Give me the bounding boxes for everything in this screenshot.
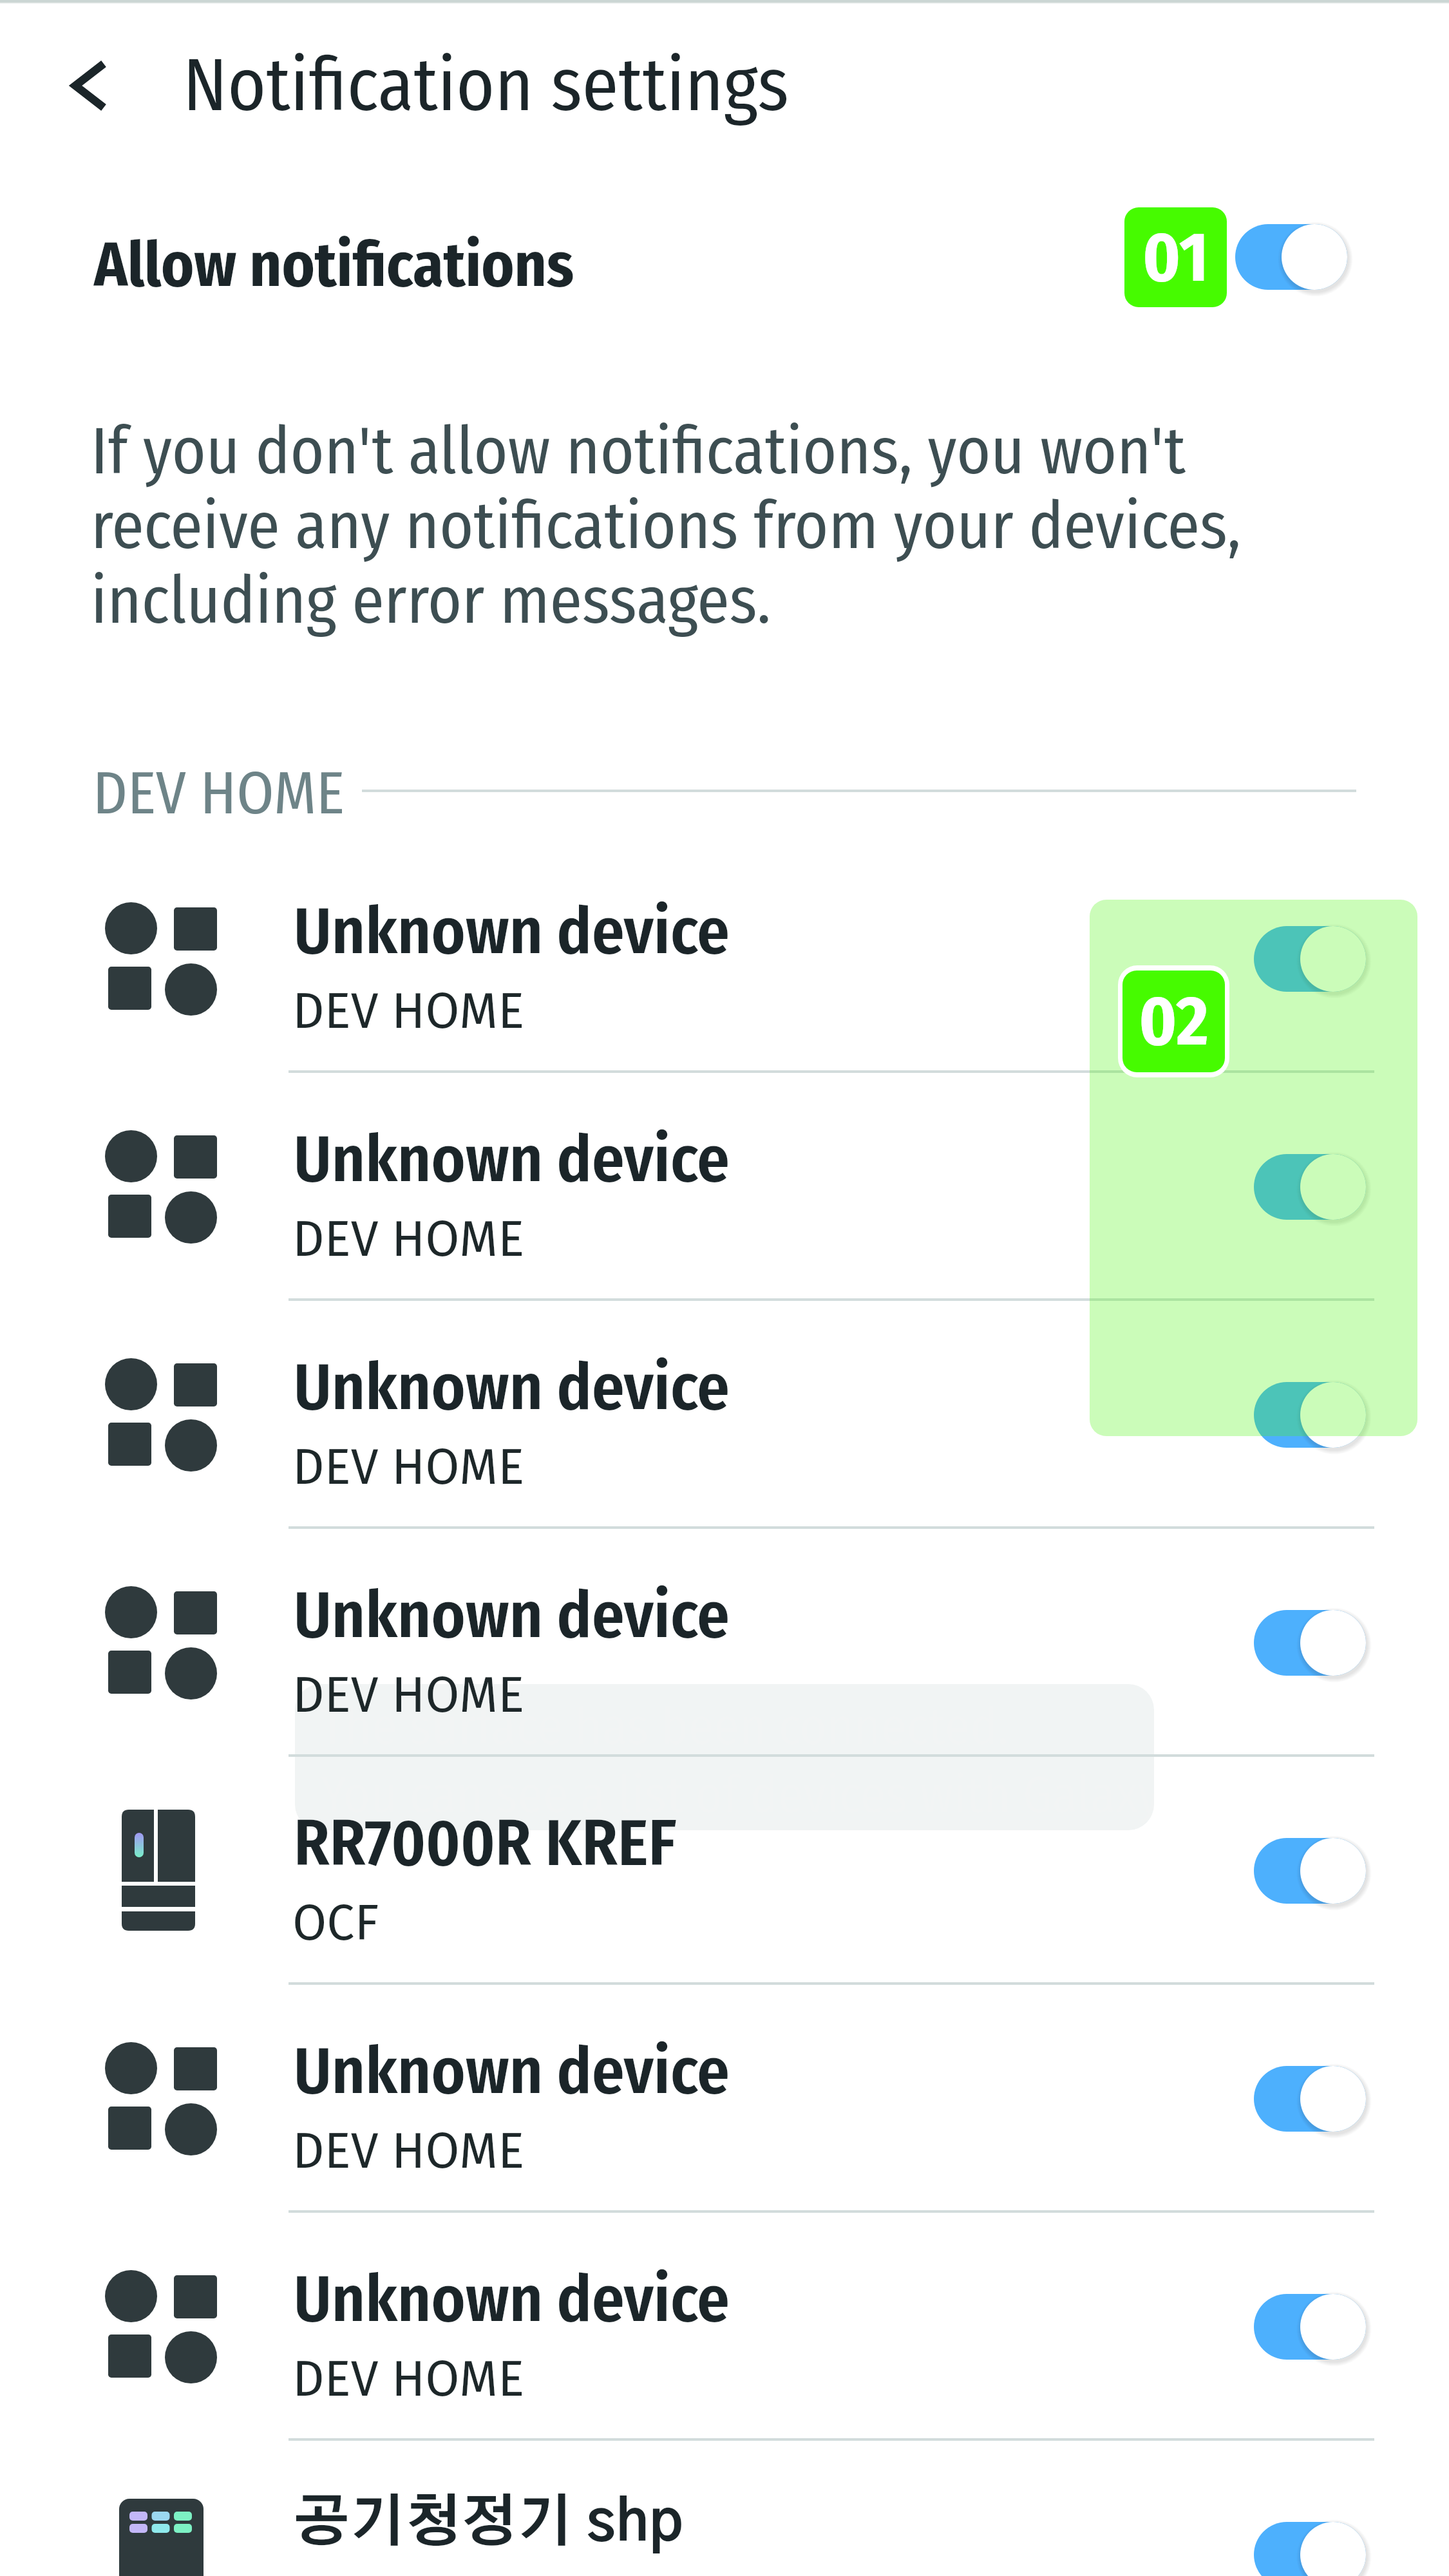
button[interactable]: Toggle notifications [1254,1154,1366,1220]
button[interactable]: Toggle notifications [1254,2522,1366,2576]
staticText: 02 [1139,980,1209,1063]
staticText: You can see a list of devices with Galax… [321,1764,1154,1826]
staticText: Unknown device [294,893,730,970]
button[interactable]: Unknown device [0,2213,1449,2441]
staticText: DEV HOME [292,981,525,1041]
button[interactable]: Toggle notifications [1235,224,1347,290]
staticText: Unknown device [294,2260,730,2338]
button[interactable]: Toggle notifications [1254,926,1366,992]
button[interactable]: 공기청정기 shp [0,2441,1449,2576]
staticText: Notification settings [183,41,789,129]
staticText: The surface has been connected. [321,1696,1009,1757]
button[interactable]: Unknown device [0,1073,1449,1301]
staticText: DEV HOME [292,1209,525,1269]
button[interactable]: Unknown device [0,1985,1449,2213]
staticText: Unknown device [294,1349,730,1426]
staticText: Unknown device [294,1121,730,1198]
button[interactable]: RR7000R KREF [0,1757,1449,1985]
button[interactable]: Unknown device [0,845,1449,1073]
staticText: 01 [1142,216,1209,299]
staticText: Unknown device [294,1577,730,1654]
staticText: DEV HOME [292,1437,525,1497]
staticText: Unknown device [294,2032,730,2110]
staticText: DEV HOME [292,2349,525,2409]
staticText: DEV HOME [292,2121,525,2181]
button[interactable]: Toggle notifications [1254,1382,1366,1448]
button[interactable]: Allow notifications [0,185,1449,344]
button[interactable]: Toggle notifications [1254,2066,1366,2132]
button[interactable]: Toggle notifications [1254,1838,1366,1904]
staticText: If you don't allow notifications, you wo… [91,413,1269,640]
staticText: Allow notifications [94,228,574,302]
staticText: DEV HOME [292,1665,525,1725]
staticText: OCF [292,1893,379,1953]
staticText: DEV HOME [93,757,345,829]
button[interactable]: Unknown device [0,1301,1449,1529]
button[interactable]: Toggle notifications [1254,2294,1366,2360]
button[interactable]: Navigate back [51,33,128,138]
button[interactable]: Toggle notifications [1254,1610,1366,1676]
staticText: 공기청정기 shp [294,2496,683,2552]
button[interactable]: Unknown device [0,1529,1449,1757]
staticText: RR7000R KREF [294,1804,677,1882]
